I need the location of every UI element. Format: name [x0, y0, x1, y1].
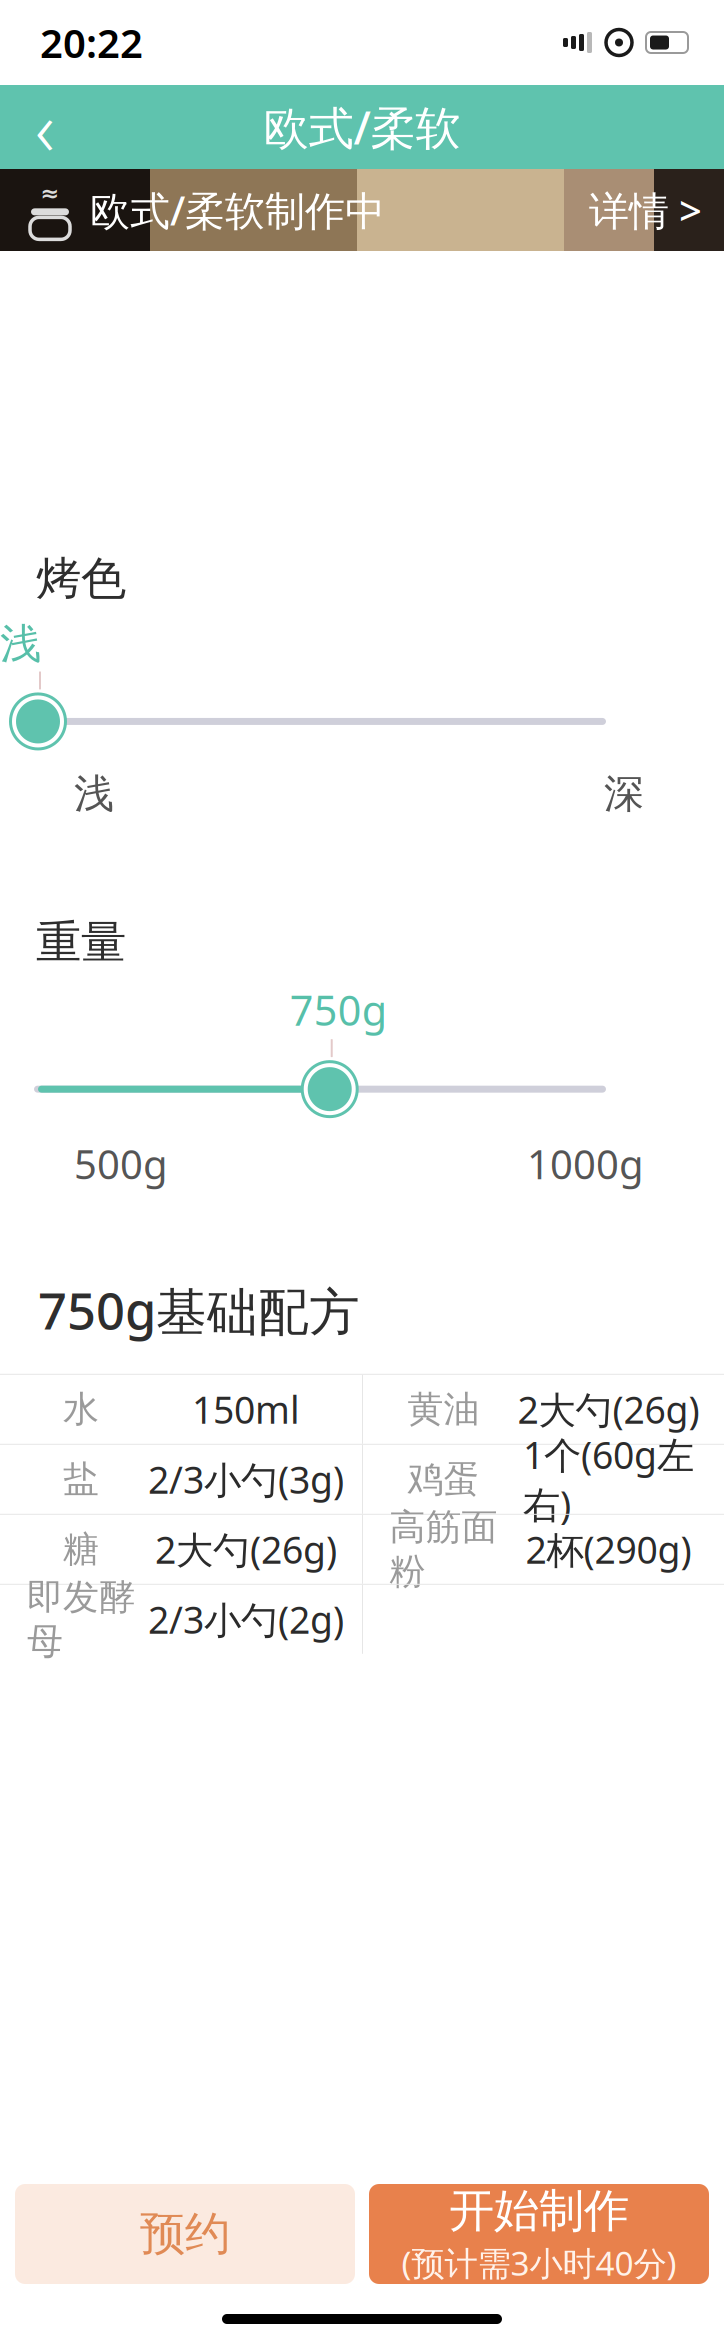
staticText: 欧式/柔软制作中	[90, 183, 385, 236]
staticText: 500g	[74, 1137, 168, 1190]
staticText: 黄油	[407, 1387, 479, 1431]
staticText: 即发酵母	[27, 1575, 135, 1663]
staticText: 2大勺(26g)	[517, 1384, 699, 1434]
staticText: 重量	[36, 915, 126, 970]
staticText: 水	[63, 1387, 99, 1431]
staticText: 750g基础配方	[38, 1276, 360, 1344]
staticText: 2/3小勺(3g)	[148, 1454, 344, 1504]
staticText: 2杯(290g)	[525, 1524, 691, 1574]
staticText: 糖	[63, 1527, 99, 1571]
staticText: ‹	[35, 77, 55, 177]
staticText: 浅	[74, 769, 114, 819]
button[interactable]: ≈	[0, 169, 724, 251]
staticText: 2大勺(26g)	[155, 1524, 337, 1574]
staticText: ≈	[40, 181, 59, 206]
staticText: 浅	[0, 619, 41, 669]
staticText: 欧式/柔软	[263, 97, 460, 157]
button[interactable]: 预约	[15, 2184, 355, 2284]
staticText: (预计需3小时40分)	[401, 2241, 676, 2285]
staticText: 1000g	[527, 1137, 644, 1190]
button[interactable]: 开始制作	[369, 2184, 709, 2284]
staticText: 2/3小勺(2g)	[148, 1594, 344, 1644]
staticText: 1个(60g左右)	[523, 1430, 694, 1529]
staticText: 预约	[140, 2206, 230, 2262]
staticText: 开始制作	[449, 2183, 629, 2239]
staticText: 20:22	[40, 16, 143, 69]
staticText: 鸡蛋	[407, 1457, 479, 1501]
staticText: 150ml	[192, 1384, 300, 1434]
staticText: 750g	[290, 982, 387, 1037]
button[interactable]: Back	[0, 85, 90, 169]
staticText: 盐	[63, 1457, 99, 1501]
staticText: 烤色	[36, 551, 126, 607]
staticText: 高筋面粉	[389, 1505, 497, 1593]
staticText: 深	[604, 769, 644, 819]
staticText: 详情 >	[589, 183, 702, 236]
